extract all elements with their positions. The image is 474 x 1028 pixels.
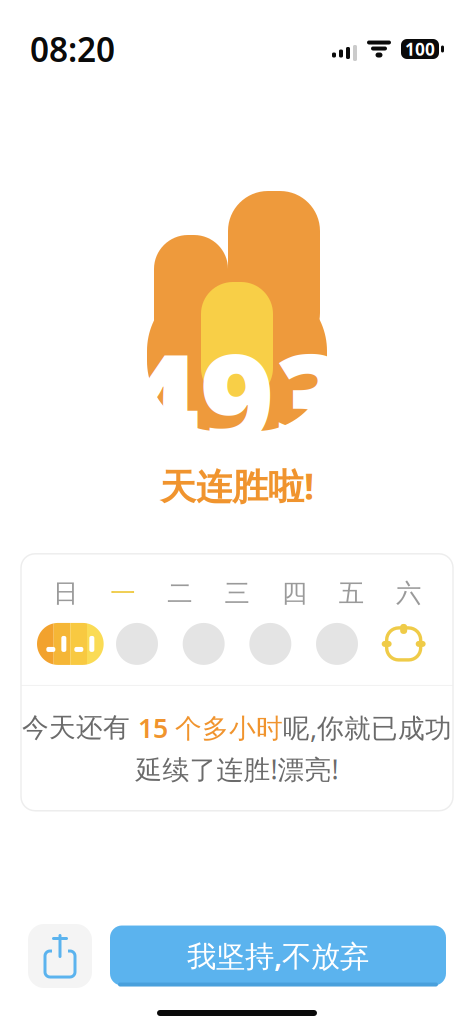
staticText: 我坚持,不放弃 <box>187 936 369 975</box>
staticText: 四 <box>282 578 307 609</box>
staticText: 延续了连胜!漂亮! <box>135 751 338 787</box>
staticText: 08:20 <box>30 27 115 71</box>
button[interactable]: 分享 <box>28 924 92 988</box>
button[interactable]: 我坚持,不放弃 <box>110 925 446 986</box>
staticText: 一 <box>110 578 135 609</box>
staticText: 今天还有 <box>22 711 138 744</box>
staticText: 三 <box>224 578 249 609</box>
staticText: 日 <box>53 578 78 609</box>
staticText: 呢,你就已成功 <box>283 710 452 745</box>
staticText: 二 <box>167 578 192 609</box>
staticText: 天连胜啦! <box>160 462 314 510</box>
staticText: 493 <box>124 312 349 482</box>
staticText: 15 个多小时 <box>138 710 283 745</box>
staticText: 六 <box>396 578 421 609</box>
staticText: 五 <box>339 578 364 609</box>
staticText: 100 <box>405 37 435 60</box>
